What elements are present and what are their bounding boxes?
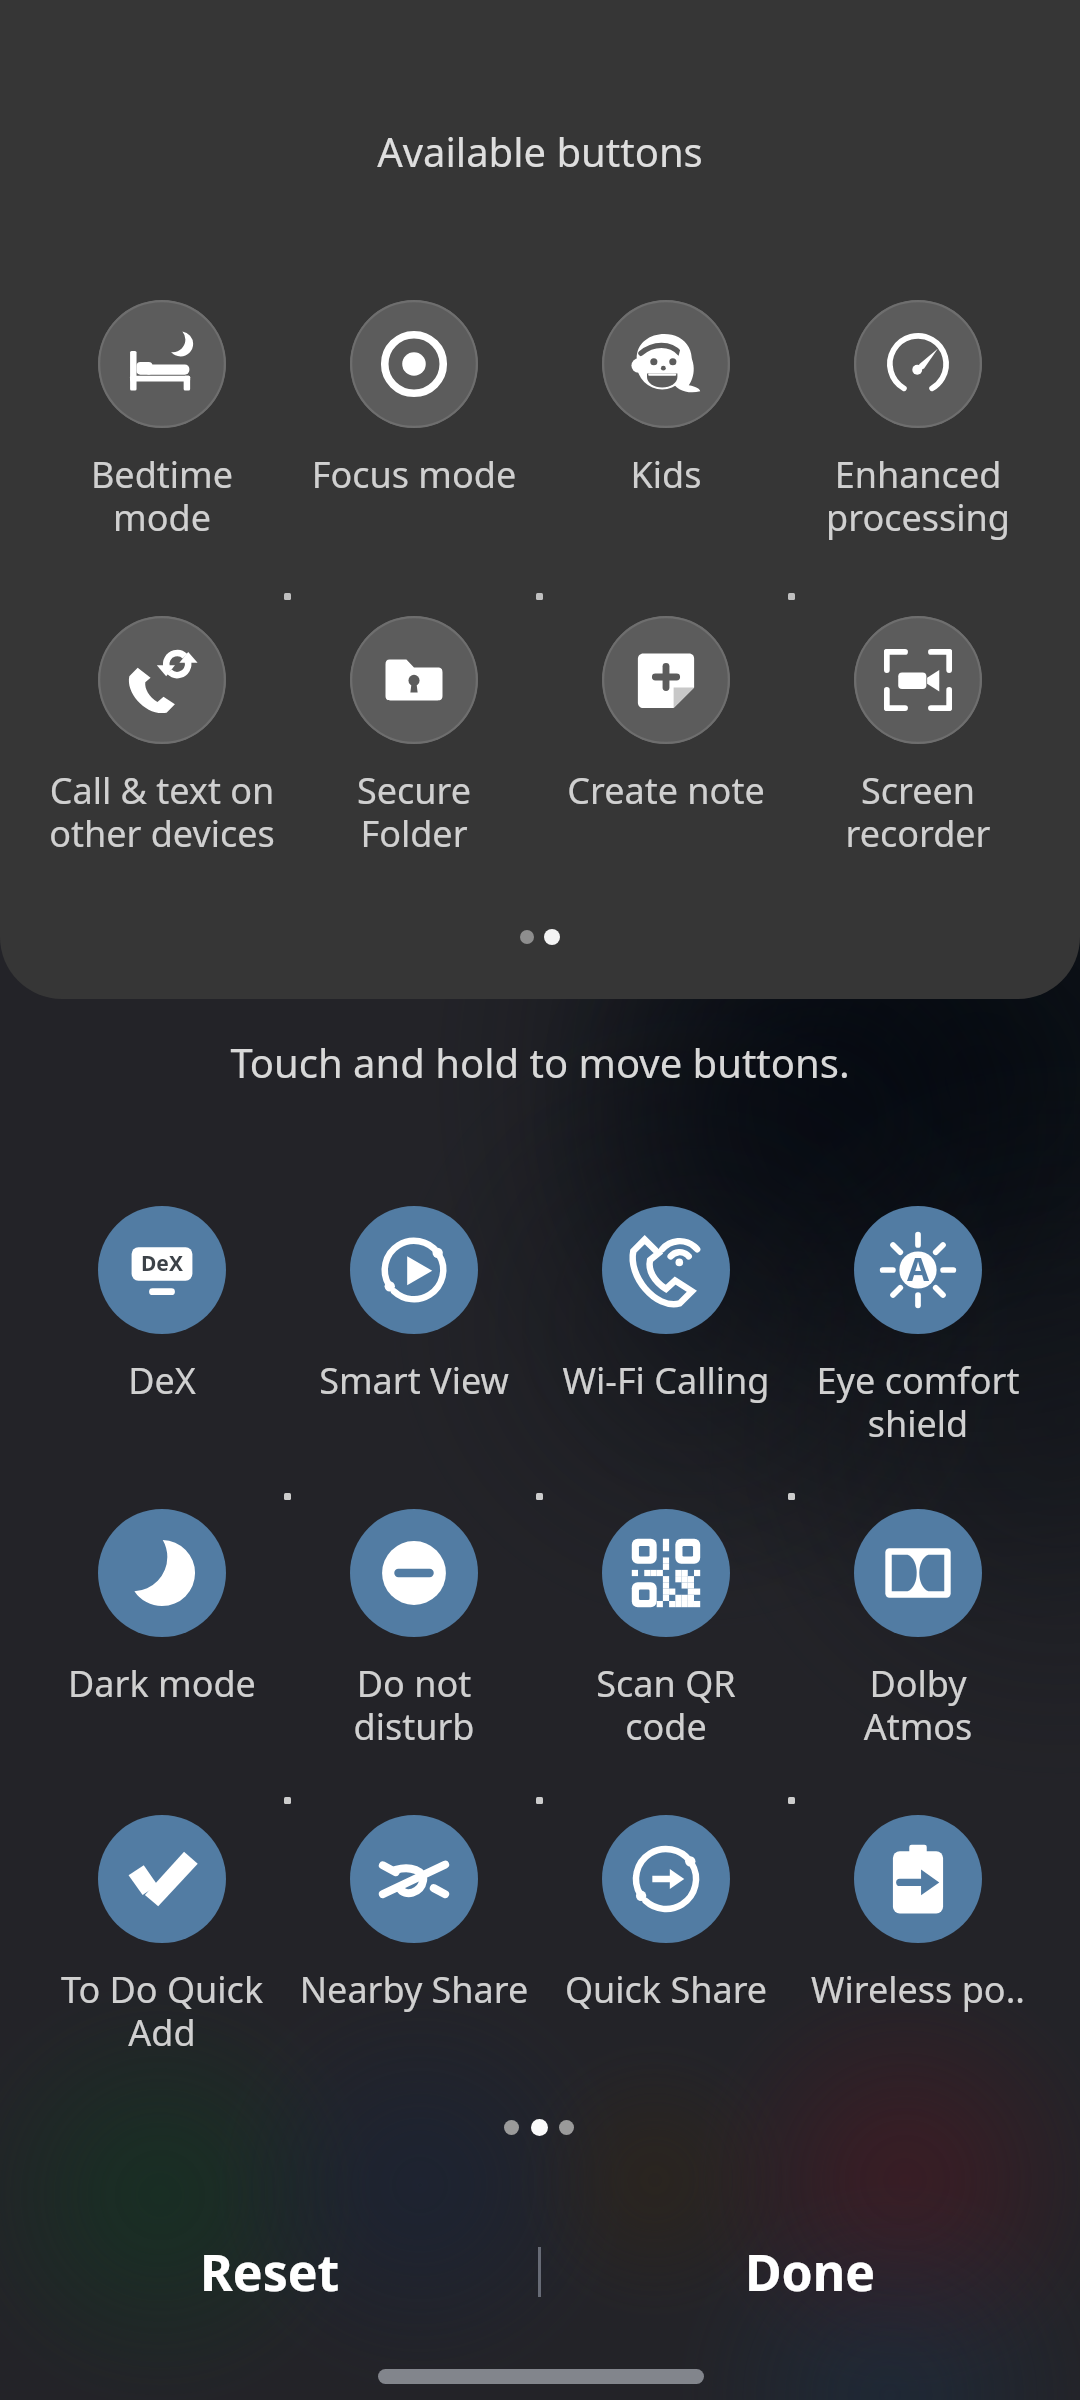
- button[interactable]: Eye comfort shield: [792, 1196, 1044, 1416]
- button[interactable]: Nearby Share: [288, 1805, 540, 2025]
- staticText: Screen recorder: [778, 766, 1058, 858]
- staticText: To Do Quick Add: [22, 1965, 302, 2057]
- staticText: Do not disturb: [274, 1659, 554, 1751]
- staticText: DeX: [141, 1249, 183, 1278]
- staticText: Quick Share: [526, 1965, 806, 2014]
- button[interactable]: Wireless po..: [792, 1805, 1044, 2025]
- button[interactable]: To Do Quick Add: [36, 1805, 288, 2025]
- button[interactable]: Focus mode: [288, 290, 540, 510]
- staticText: Kids: [526, 450, 806, 499]
- staticText: Done: [745, 2238, 876, 2306]
- button[interactable]: Wi-Fi Calling: [540, 1196, 792, 1416]
- staticText: DeX: [22, 1356, 302, 1405]
- button[interactable]: Call & text on other devices: [36, 606, 288, 826]
- button[interactable]: Quick Share: [540, 1805, 792, 2025]
- staticText: Bedtime mode: [22, 450, 302, 542]
- button[interactable]: DeX: [36, 1196, 288, 1416]
- staticText: Touch and hold to move buttons.: [0, 1035, 1080, 1089]
- staticText: Create note: [526, 766, 806, 815]
- staticText: Smart View: [274, 1356, 554, 1405]
- button[interactable]: Dark mode: [36, 1499, 288, 1719]
- staticText: Wireless po..: [778, 1965, 1058, 2014]
- staticText: Wi-Fi Calling: [526, 1356, 806, 1405]
- staticText: Call & text on other devices: [22, 766, 302, 858]
- button[interactable]: Enhanced processing: [792, 290, 1044, 510]
- button[interactable]: Secure Folder: [288, 606, 540, 826]
- staticText: A: [907, 1247, 930, 1291]
- button[interactable]: Scan QR code: [540, 1499, 792, 1719]
- staticText: Nearby Share: [274, 1965, 554, 2014]
- button[interactable]: Bedtime mode: [36, 290, 288, 510]
- staticText: Available buttons: [0, 124, 1080, 178]
- staticText: Enhanced processing: [778, 450, 1058, 542]
- staticText: Eye comfort shield: [778, 1356, 1058, 1448]
- staticText: Scan QR code: [526, 1659, 806, 1751]
- button[interactable]: Smart View: [288, 1196, 540, 1416]
- staticText: Secure Folder: [274, 766, 554, 858]
- button[interactable]: Kids: [540, 290, 792, 510]
- button[interactable]: Do not disturb: [288, 1499, 540, 1719]
- button[interactable]: Screen recorder: [792, 606, 1044, 826]
- staticText: Dolby Atmos: [778, 1659, 1058, 1751]
- button[interactable]: Create note: [540, 606, 792, 826]
- staticText: Focus mode: [274, 450, 554, 499]
- button[interactable]: Done: [690, 2229, 930, 2315]
- staticText: Dark mode: [22, 1659, 302, 1708]
- button[interactable]: Reset: [150, 2229, 390, 2315]
- button[interactable]: Dolby Atmos: [792, 1499, 1044, 1719]
- staticText: Reset: [200, 2238, 340, 2306]
